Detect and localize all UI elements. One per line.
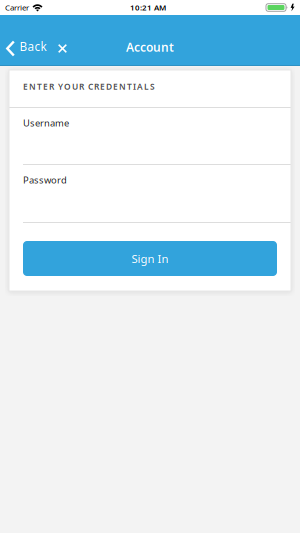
staticText: Back xyxy=(19,39,46,54)
button[interactable] xyxy=(58,44,67,53)
staticText: Password xyxy=(23,173,67,186)
staticText: 10:21 AM xyxy=(130,2,166,13)
button[interactable]: Sign In xyxy=(23,241,277,276)
button[interactable]: Username xyxy=(9,108,291,164)
staticText: Carrier xyxy=(5,2,29,13)
button[interactable]: Password xyxy=(9,165,291,222)
staticText: Sign In xyxy=(131,251,168,266)
button[interactable]: Back xyxy=(0,38,46,54)
staticText: E N T E R Y O U R C R E D E N T I A L S xyxy=(23,81,155,92)
staticText: Account xyxy=(126,39,174,55)
staticText: Username xyxy=(23,116,69,129)
